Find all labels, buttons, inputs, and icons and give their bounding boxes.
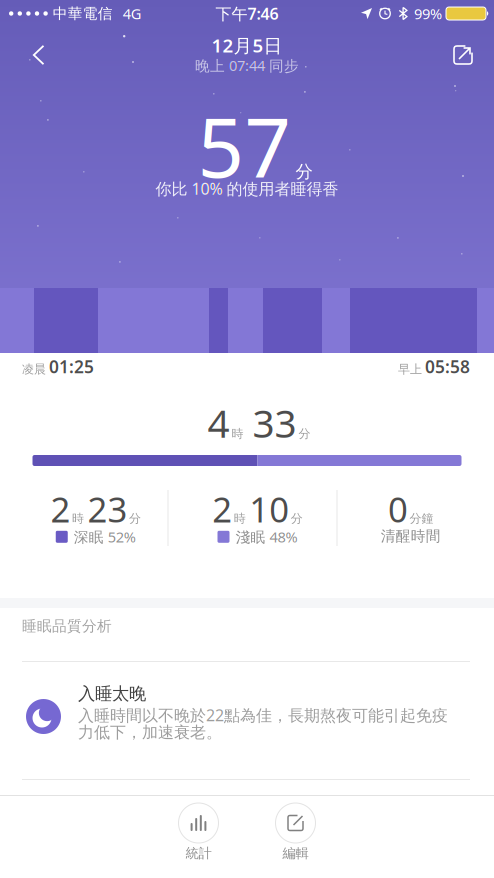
staticText: 4	[207, 397, 229, 448]
staticText: 33	[252, 397, 296, 448]
staticText: 2	[212, 486, 232, 532]
staticText: 23	[87, 486, 127, 532]
staticText: 淺眠 48%	[235, 527, 297, 546]
staticText: 時	[231, 426, 243, 441]
staticText: 57	[197, 92, 291, 200]
staticText: 時	[72, 511, 84, 526]
staticText: 05:58	[425, 355, 470, 378]
staticText: 早上	[398, 362, 422, 377]
staticText: 99%	[414, 4, 442, 23]
staticText: 10	[249, 486, 289, 532]
staticText: 統計	[185, 845, 211, 861]
button[interactable]: 分享	[453, 35, 494, 75]
staticText: 分	[298, 426, 310, 441]
staticText: 力低下，加速衰老。	[78, 723, 222, 742]
button[interactable]: 統計	[178, 803, 218, 861]
button[interactable]: 編輯	[275, 803, 315, 861]
staticText: 睡眠品質分析	[22, 617, 112, 635]
staticText: 凌晨	[22, 362, 46, 377]
staticText: 中華電信	[53, 4, 113, 22]
staticText: 0	[388, 486, 408, 532]
staticText: 分	[291, 511, 303, 526]
staticText: 你比 10% 的使用者睡得香	[155, 178, 338, 199]
staticText: 分鐘	[409, 511, 433, 526]
staticText: 2	[50, 486, 70, 532]
staticText: 時	[234, 511, 246, 526]
staticText: 入睡時間以不晚於22點為佳，長期熬夜可能引起免疫	[78, 704, 448, 725]
staticText: 編輯	[282, 845, 308, 861]
staticText: 分	[295, 161, 312, 182]
staticText: 01:25	[49, 355, 94, 378]
staticText: 深眠 52%	[74, 527, 136, 546]
staticText: 下午7:46	[215, 3, 278, 24]
staticText: 分	[129, 511, 141, 526]
button[interactable]: 返回	[0, 35, 44, 75]
staticText: 清醒時間	[381, 527, 441, 545]
staticText: 12月5日	[211, 33, 282, 58]
staticText: 晚上 07:44 同步	[195, 56, 299, 75]
staticText: 4G	[123, 4, 142, 23]
staticText: 入睡太晚	[78, 683, 146, 704]
